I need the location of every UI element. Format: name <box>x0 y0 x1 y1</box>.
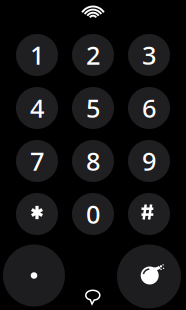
button[interactable]: 7 <box>16 140 58 182</box>
staticText: 8 <box>86 144 100 178</box>
staticText: 3 <box>142 38 156 72</box>
staticText: 1 <box>30 38 44 72</box>
staticText: 4 <box>30 91 44 125</box>
staticText: 0 <box>86 197 100 231</box>
button[interactable]: 6 <box>128 87 170 129</box>
staticText: 6 <box>142 91 156 125</box>
staticText: 9 <box>142 144 156 178</box>
button[interactable] <box>16 193 58 235</box>
button[interactable]: 0 <box>72 193 114 235</box>
staticText: 7 <box>30 144 44 178</box>
button[interactable]: 4 <box>16 87 58 129</box>
button[interactable]: 1 <box>16 34 58 76</box>
staticText: 2 <box>86 38 100 72</box>
button[interactable]: 3 <box>128 34 170 76</box>
button[interactable]: 2 <box>72 34 114 76</box>
button[interactable]: 9 <box>128 140 170 182</box>
button[interactable]: Bomb <box>117 244 181 308</box>
button[interactable] <box>128 193 170 235</box>
button[interactable]: 8 <box>72 140 114 182</box>
staticText: 5 <box>86 91 100 125</box>
button[interactable]: 5 <box>72 87 114 129</box>
button[interactable]: Record <box>3 244 65 306</box>
button[interactable]: Messages <box>78 283 108 310</box>
